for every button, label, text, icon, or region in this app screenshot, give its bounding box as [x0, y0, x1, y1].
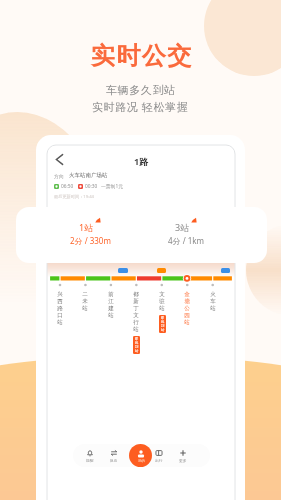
- staticText: 换向: [110, 458, 118, 463]
- staticText: 路: [57, 305, 63, 312]
- staticText: 塘: [184, 298, 190, 305]
- staticText: 文: [159, 291, 165, 298]
- staticText: 驻: [159, 298, 165, 305]
- button[interactable]: 文: [157, 291, 167, 333]
- staticText: 站: [57, 319, 63, 326]
- staticText: 最后更新时间：19:44: [54, 194, 95, 200]
- staticText: 1站: [79, 221, 94, 233]
- button[interactable]: 出行: [151, 449, 167, 463]
- staticText: 将: [135, 341, 139, 345]
- staticText: 火: [210, 291, 216, 298]
- staticText: 站: [159, 305, 165, 312]
- staticText: 未: [82, 298, 88, 305]
- staticText: 站: [135, 349, 139, 353]
- staticText: 丁: [133, 305, 139, 312]
- staticText: 车辆多久到站: [106, 83, 176, 97]
- button[interactable]: 提醒: [82, 449, 98, 463]
- staticText: 我的: [138, 459, 145, 463]
- staticText: 实时公交: [90, 41, 192, 71]
- staticText: 3站: [175, 221, 190, 233]
- staticText: 口: [57, 312, 63, 319]
- staticText: 文: [133, 312, 139, 319]
- staticText: 公: [184, 305, 190, 312]
- staticText: 即: [135, 337, 139, 341]
- staticText: 一票制1元: [101, 183, 123, 190]
- staticText: 站: [133, 326, 139, 333]
- staticText: 更多: [179, 458, 187, 463]
- staticText: 建: [108, 305, 114, 312]
- staticText: 江: [108, 298, 114, 305]
- staticText: 实时路况 轻松掌握: [92, 99, 189, 114]
- button[interactable]: 二: [80, 291, 90, 312]
- staticText: 方向: [54, 173, 64, 179]
- button[interactable]: 前: [106, 291, 116, 319]
- staticText: 到: [135, 345, 139, 349]
- staticText: 站: [108, 312, 114, 319]
- staticText: 06:50: [61, 183, 74, 190]
- button[interactable]: 金: [182, 291, 192, 326]
- staticText: 将: [161, 320, 165, 324]
- staticText: 行: [133, 319, 139, 326]
- button[interactable]: 3站: [156, 221, 216, 246]
- button[interactable]: 兴: [55, 291, 65, 326]
- staticText: 新: [133, 298, 139, 305]
- staticText: 出行: [155, 458, 163, 463]
- staticText: 提醒: [86, 458, 94, 463]
- staticText: 到: [161, 324, 165, 328]
- staticText: 园: [184, 312, 190, 319]
- staticText: 站: [161, 328, 165, 332]
- staticText: 4分 / 1km: [168, 235, 205, 246]
- staticText: 站: [210, 305, 216, 312]
- staticText: 00:30: [85, 183, 98, 190]
- button[interactable]: 1站: [60, 221, 120, 246]
- button[interactable]: 更多: [175, 449, 191, 463]
- staticText: 站: [82, 305, 88, 312]
- staticText: 二: [82, 291, 88, 298]
- staticText: 站: [184, 319, 190, 326]
- staticText: 都: [133, 291, 139, 298]
- staticText: 兴: [57, 291, 63, 298]
- button[interactable]: 我的: [129, 444, 152, 467]
- staticText: 即: [161, 316, 165, 320]
- staticText: 2分 / 330m: [70, 235, 111, 246]
- staticText: 前: [108, 291, 114, 298]
- button[interactable]: 换向: [106, 449, 122, 463]
- button[interactable]: 都: [131, 291, 141, 354]
- staticText: 1路: [47, 155, 235, 167]
- staticText: 火车站南广场站: [69, 172, 108, 179]
- staticText: 西: [57, 298, 63, 305]
- button[interactable]: 火: [208, 291, 218, 312]
- staticText: 车: [210, 298, 216, 305]
- button[interactable]: 返回: [54, 154, 65, 165]
- staticText: 金: [184, 291, 190, 298]
